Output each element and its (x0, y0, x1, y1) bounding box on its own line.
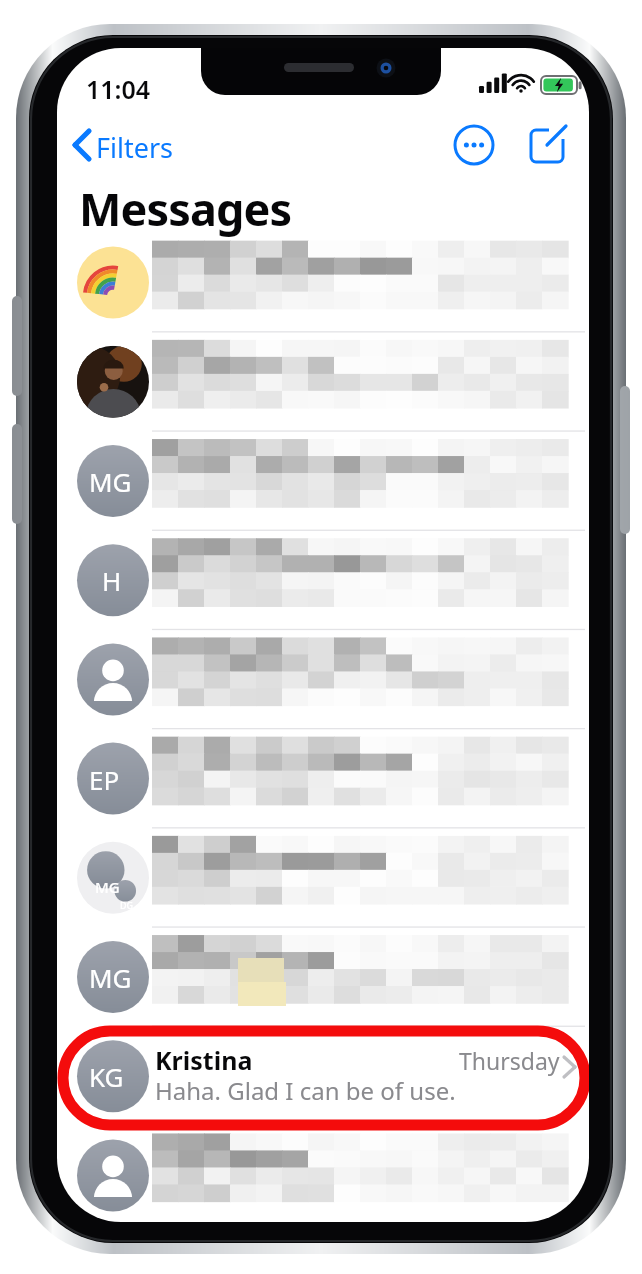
button[interactable]: Conversation (57, 927, 589, 1026)
staticText: Thursday (459, 1045, 560, 1076)
staticText: KG (89, 1059, 124, 1094)
staticText: 11:04 (86, 72, 151, 106)
staticText: EP (89, 762, 120, 797)
staticText: Messages (79, 178, 292, 239)
staticText: MG (95, 877, 120, 897)
button[interactable]: Conversation (57, 729, 589, 828)
staticText: H (102, 563, 122, 598)
button[interactable]: Kristina (68, 1036, 580, 1120)
button[interactable]: Conversation (57, 828, 589, 927)
button[interactable]: More options (455, 126, 495, 166)
staticText: Filters (96, 129, 174, 166)
button[interactable]: Filters (63, 126, 183, 168)
button[interactable]: Conversation (57, 630, 589, 729)
button[interactable]: Conversation (57, 431, 589, 530)
staticText: Haha. Glad I can be of use. (155, 1074, 456, 1107)
button[interactable]: Conversation (57, 1126, 589, 1225)
button[interactable]: Conversation (57, 233, 589, 332)
staticText: DG (120, 899, 134, 911)
button[interactable]: Conversation (57, 531, 589, 630)
staticText: Kristina (155, 1043, 253, 1077)
staticText: MG (89, 464, 132, 499)
staticText: MG (89, 960, 132, 995)
button[interactable]: Compose new message (526, 124, 570, 168)
button[interactable]: Conversation (57, 332, 589, 431)
